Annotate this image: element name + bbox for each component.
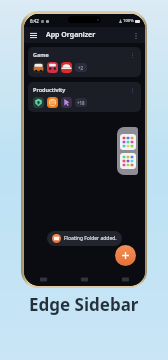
button[interactable]: +18	[75, 98, 87, 107]
button[interactable]	[47, 62, 58, 73]
button[interactable]: Navigation item 2	[79, 274, 90, 285]
button[interactable]: Floating Folder added.	[47, 231, 122, 246]
staticText: 6:42	[30, 18, 39, 24]
button[interactable]: Game	[28, 47, 141, 77]
staticText: 100%	[123, 18, 134, 24]
button[interactable]	[47, 97, 58, 108]
button[interactable]	[61, 97, 72, 108]
staticText: Game	[33, 51, 49, 58]
staticText: Productivity	[33, 86, 66, 93]
button[interactable]: Navigation item 3	[120, 274, 131, 285]
staticText: Floating Folder added.	[64, 235, 117, 242]
button[interactable]: Game group options	[128, 51, 137, 60]
staticText: +2	[78, 65, 84, 71]
button[interactable]: Floating folder 2	[120, 153, 136, 169]
button[interactable]: More options	[130, 30, 141, 41]
button[interactable]: Navigation item 1	[38, 274, 49, 285]
button[interactable]: Productivity group options	[128, 86, 137, 95]
staticText: +18	[77, 100, 85, 106]
button[interactable]: +2	[75, 63, 87, 72]
button[interactable]	[33, 97, 44, 108]
staticText: Edge Sidebar	[29, 293, 139, 316]
staticText: App Organizer	[46, 30, 96, 40]
button[interactable]: Productivity	[28, 82, 141, 112]
button[interactable]: Floating folder 1	[120, 134, 136, 150]
button[interactable]	[61, 62, 72, 73]
button[interactable]: Edge sidebar panel	[117, 127, 138, 175]
button[interactable]: Open navigation menu	[28, 30, 39, 41]
button[interactable]: Add floating folder	[115, 245, 136, 266]
button[interactable]	[33, 62, 44, 73]
